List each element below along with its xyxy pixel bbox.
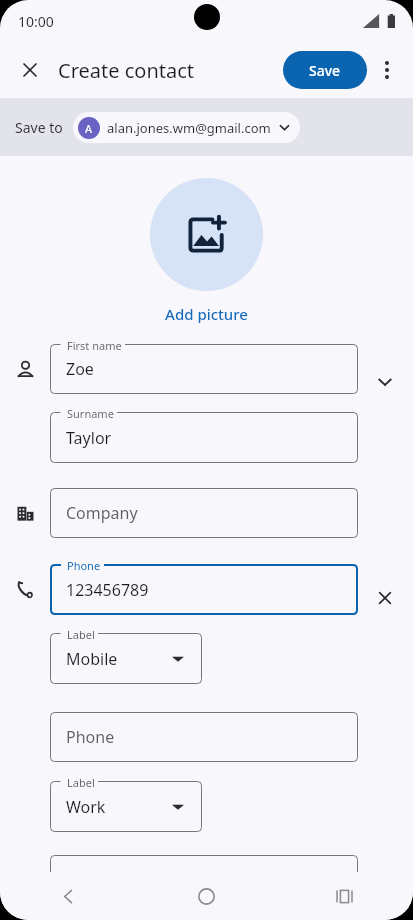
button[interactable]: Recent apps [275, 872, 413, 920]
button[interactable]: Label [50, 781, 202, 832]
staticText: 123456789 [66, 579, 149, 601]
button[interactable]: Company [50, 488, 358, 538]
button[interactable]: Close [8, 48, 52, 92]
staticText: Save to [15, 118, 63, 137]
button[interactable]: Clear phone number [366, 579, 404, 617]
staticText: Surname [67, 406, 114, 421]
button[interactable]: Phone [50, 712, 358, 762]
button[interactable]: Add picture [150, 178, 263, 291]
button[interactable]: Home [137, 872, 275, 920]
staticText: First name [67, 338, 122, 353]
button[interactable]: Add picture [155, 301, 258, 327]
staticText: Phone [66, 726, 115, 748]
button[interactable]: Save [283, 51, 367, 89]
button[interactable]: Phone [50, 564, 358, 615]
button[interactable] [50, 855, 358, 905]
staticText: Zoe [66, 358, 94, 380]
staticText: Company [66, 502, 138, 524]
staticText: Phone [67, 558, 101, 573]
staticText: A [85, 121, 93, 136]
staticText: Work [66, 796, 106, 818]
button[interactable]: Label [50, 633, 202, 684]
staticText: Taylor [66, 427, 112, 449]
button[interactable]: A [73, 112, 300, 143]
staticText: Add picture [165, 304, 248, 324]
staticText: Save [309, 61, 341, 80]
button[interactable]: Back [0, 872, 137, 920]
button[interactable]: First name [50, 344, 358, 394]
staticText: Label [67, 627, 95, 642]
staticText: Label [67, 775, 95, 790]
staticText: 10:00 [18, 12, 54, 31]
button[interactable]: More options [367, 50, 407, 90]
staticText: Mobile [66, 648, 118, 670]
staticText: alan.jones.wm@gmail.com [107, 119, 271, 137]
button[interactable]: Expand name fields [366, 363, 404, 401]
button[interactable]: Surname [50, 412, 358, 463]
staticText: Create contact [58, 57, 195, 84]
